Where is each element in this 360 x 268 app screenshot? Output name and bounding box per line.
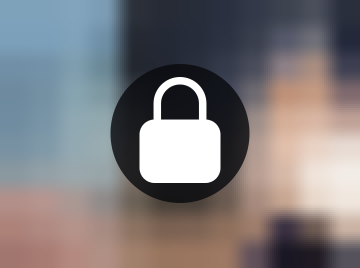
- button[interactable]: Locked: [0, 0, 360, 268]
